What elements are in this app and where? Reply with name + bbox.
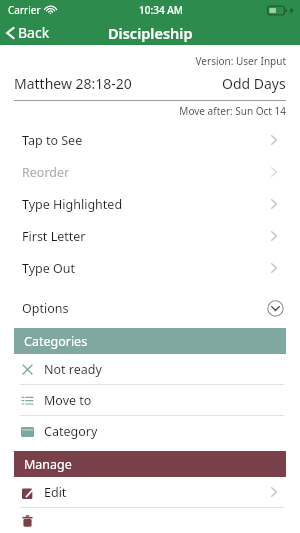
staticText: Type Highlighted <box>22 196 123 213</box>
button[interactable]: Type Highlighted <box>0 188 300 220</box>
staticText: Back <box>18 23 50 42</box>
staticText: Edit <box>44 484 67 501</box>
button[interactable]: Tap to See <box>0 124 300 156</box>
staticText: Version: User Input <box>0 54 286 68</box>
button[interactable]: First Letter <box>0 220 300 252</box>
button[interactable]: Options <box>0 294 300 322</box>
staticText: Manage <box>24 456 72 473</box>
staticText: Category <box>44 423 98 440</box>
staticText: Not ready <box>44 361 102 378</box>
button[interactable]: Reorder <box>0 156 300 188</box>
staticText: Options <box>22 300 69 317</box>
button[interactable]: Edit <box>0 477 300 507</box>
other: Expand options <box>267 300 284 317</box>
staticText: Carrier <box>8 3 41 17</box>
staticText: Type Out <box>22 260 76 277</box>
staticText: Categories <box>24 333 88 350</box>
staticText: First Letter <box>22 228 86 245</box>
button[interactable]: Move to <box>0 385 300 415</box>
button[interactable]: Category <box>0 416 300 446</box>
staticText: Tap to See <box>22 132 83 149</box>
staticText: Matthew 28:18-20 <box>14 74 132 93</box>
button[interactable]: Type Out <box>0 252 300 284</box>
button[interactable]: Delete <box>0 508 300 533</box>
staticText: Move after: Sun Oct 14 <box>0 104 286 118</box>
staticText: 10:34 AM <box>139 3 183 17</box>
staticText: Discipleship <box>108 23 193 43</box>
button[interactable]: Back <box>0 20 62 45</box>
button[interactable]: Not ready <box>0 354 300 384</box>
staticText: Reorder <box>22 164 70 181</box>
staticText: Odd Days <box>222 74 286 93</box>
staticText: Move to <box>44 392 92 409</box>
